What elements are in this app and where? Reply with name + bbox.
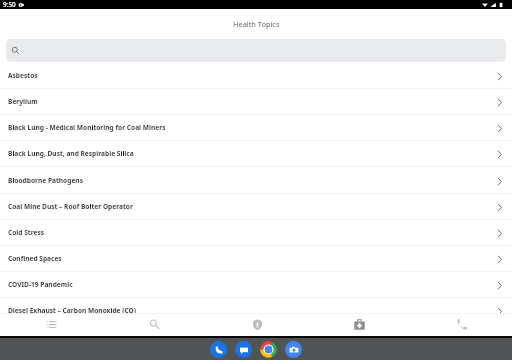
button[interactable]: Safety xyxy=(206,314,308,336)
button[interactable]: Health xyxy=(308,314,410,336)
staticText: Black Lung, Dust, and Respirable Silica xyxy=(8,149,497,158)
staticText: Bloodborne Pathogens xyxy=(8,176,497,185)
button[interactable]: COVID-19 Pandemic xyxy=(0,272,512,298)
button[interactable]: Camera xyxy=(285,341,302,358)
staticText: Black Lung - Medical Monitoring for Coal… xyxy=(8,123,497,132)
button[interactable]: Phone xyxy=(210,341,227,358)
button[interactable]: Topics list xyxy=(0,314,103,336)
button[interactable]: Coal Mine Dust – Roof Bolter Operator xyxy=(0,194,512,220)
staticText: 9:50 xyxy=(3,0,16,9)
button[interactable]: Bloodborne Pathogens xyxy=(0,167,512,194)
button[interactable]: Cold Stress xyxy=(0,220,512,246)
staticText: Confined Spaces xyxy=(8,254,497,263)
staticText: Asbestos xyxy=(8,71,497,80)
staticText: Diesel Exhaust – Carbon Monoxide (CO) xyxy=(8,306,497,313)
button[interactable]: Search xyxy=(103,314,206,336)
staticText: Cold Stress xyxy=(8,228,497,237)
button[interactable]: Confined Spaces xyxy=(0,246,512,272)
staticText: Berylium xyxy=(8,97,497,106)
button[interactable]: Black Lung - Medical Monitoring for Coal… xyxy=(0,115,512,141)
button[interactable]: Search health topics xyxy=(6,39,506,62)
button[interactable]: Contact xyxy=(410,314,512,336)
staticText: Coal Mine Dust – Roof Bolter Operator xyxy=(8,202,497,211)
button[interactable]: Diesel Exhaust – Carbon Monoxide (CO) xyxy=(0,298,512,313)
button[interactable]: Asbestos xyxy=(0,63,512,89)
staticText: COVID-19 Pandemic xyxy=(8,280,497,289)
staticText: Health Topics xyxy=(233,19,280,29)
button[interactable]: Black Lung, Dust, and Respirable Silica xyxy=(0,141,512,167)
button[interactable]: Messages xyxy=(235,341,252,358)
button[interactable]: Berylium xyxy=(0,89,512,115)
button[interactable]: Chrome xyxy=(260,341,277,358)
